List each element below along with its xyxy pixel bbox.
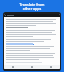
button[interactable]: Home	[22, 65, 41, 69]
staticText: Translate from other apps	[0, 2, 64, 11]
button[interactable]: App toolbar	[4, 14, 60, 17]
button[interactable]: Back	[4, 65, 22, 69]
button[interactable]: Selected text	[6, 43, 58, 45]
button[interactable]: Recents	[41, 65, 60, 69]
